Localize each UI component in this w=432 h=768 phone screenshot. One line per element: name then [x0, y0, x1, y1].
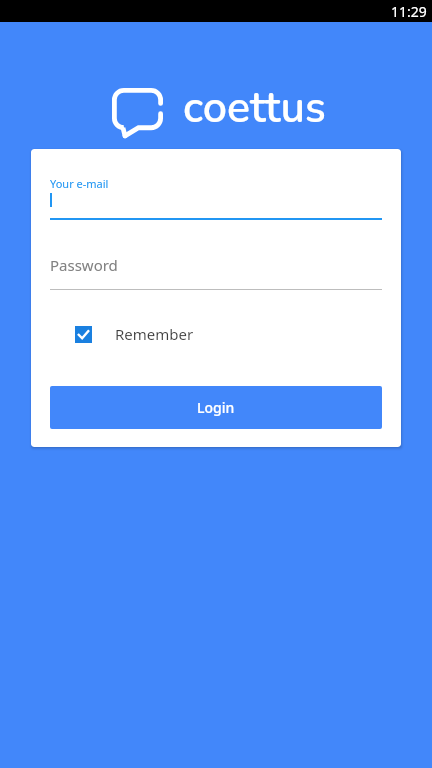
staticText: Password	[50, 255, 118, 275]
staticText: 11:29	[391, 2, 427, 21]
other: coettus logo	[112, 88, 163, 138]
staticText: coettus	[183, 79, 326, 138]
staticText: Your e-mail	[50, 176, 109, 191]
staticText: Login	[197, 398, 235, 417]
button[interactable]: Remember	[50, 321, 382, 347]
staticText: Remember	[115, 324, 194, 344]
button[interactable]: Login	[50, 386, 382, 429]
